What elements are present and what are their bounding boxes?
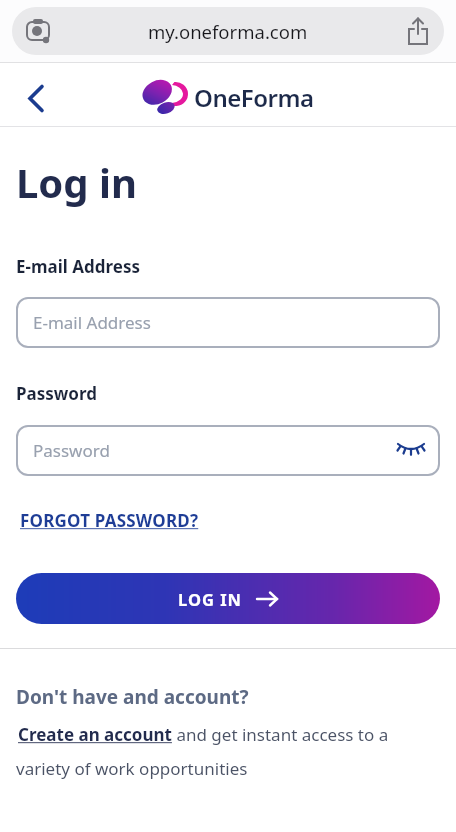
button[interactable]: FORGOT PASSWORD?	[20, 509, 199, 532]
staticText: Log in	[16, 155, 137, 209]
button[interactable]: E-mail Address	[16, 297, 440, 348]
button[interactable]: my.oneforma.com	[12, 7, 444, 55]
staticText: LOG IN	[178, 588, 243, 610]
staticText: Password	[16, 382, 97, 405]
staticText: E-mail Address	[16, 255, 141, 278]
staticText: E-mail Address	[33, 311, 151, 334]
button[interactable]: Create an account	[18, 723, 172, 746]
staticText: Password	[33, 439, 110, 462]
staticText: my.oneforma.com	[148, 19, 308, 44]
staticText: OneForma	[194, 81, 314, 114]
button[interactable]	[22, 85, 50, 113]
staticText: variety of work opportunities	[16, 757, 248, 780]
button[interactable]: LOG IN	[16, 573, 440, 624]
staticText: and get instant access to a	[172, 723, 389, 746]
button[interactable]: Password	[16, 425, 440, 476]
staticText: Don't have and account?	[16, 684, 249, 710]
button[interactable]: OneForma	[142, 77, 314, 117]
